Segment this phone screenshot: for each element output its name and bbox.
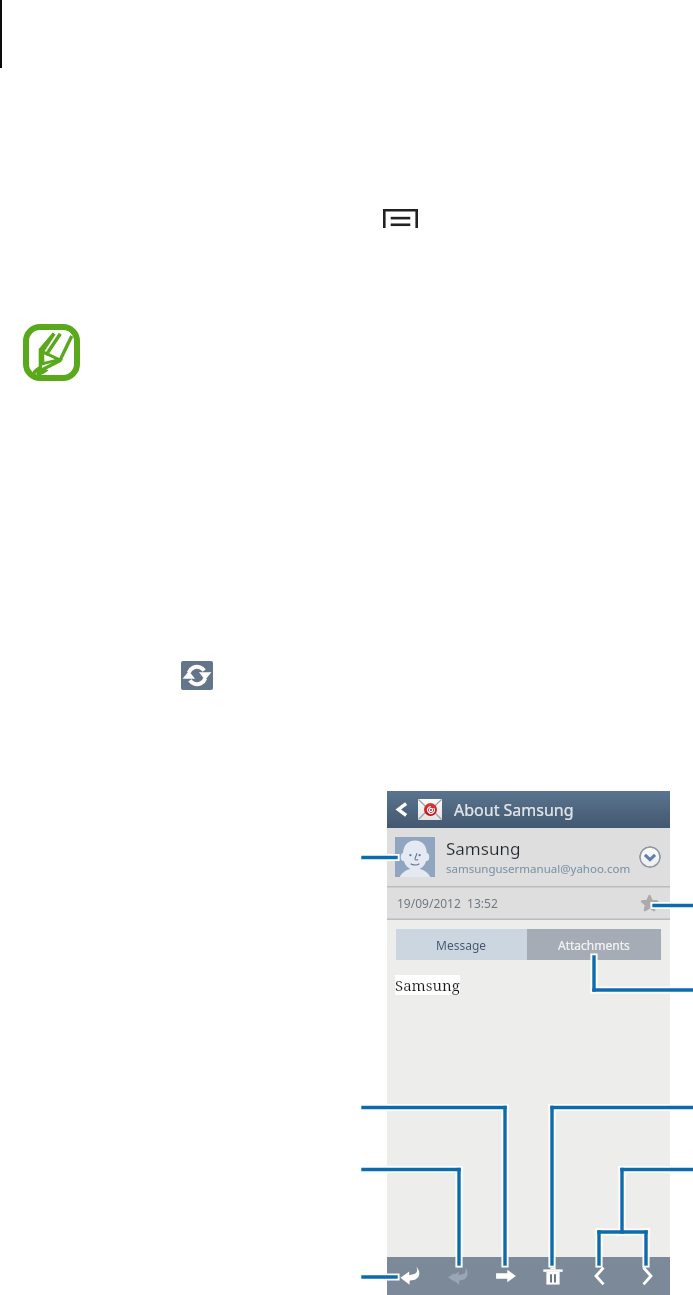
button[interactable]: Reply	[387, 1257, 435, 1295]
staticText: Message	[436, 937, 487, 953]
button[interactable]: Delete	[529, 1257, 576, 1295]
button[interactable]: Forward	[482, 1257, 529, 1295]
button[interactable]: Expand	[639, 846, 661, 868]
staticText: Samsung	[395, 975, 460, 995]
button[interactable]: Previous	[576, 1257, 623, 1295]
staticText: 19/09/2012 13:52	[397, 895, 498, 911]
staticText: samsungusermanual@yahoo.com	[446, 861, 631, 877]
button[interactable]: Next	[623, 1257, 670, 1295]
button[interactable]: 19/09/2012 13:52	[387, 886, 670, 920]
staticText: Samsung	[446, 837, 521, 860]
other: Sync	[181, 661, 213, 690]
button[interactable]: Reply all	[435, 1257, 482, 1295]
staticText: About Samsung	[454, 799, 574, 821]
button[interactable]: Message	[396, 929, 527, 960]
button[interactable]: Attachments	[527, 929, 661, 960]
button[interactable]: Back	[396, 799, 409, 820]
staticText: Attachments	[558, 937, 630, 953]
button[interactable]: Samsung	[387, 828, 670, 886]
button[interactable]: Star	[641, 895, 658, 912]
button[interactable]: Back	[387, 791, 670, 828]
